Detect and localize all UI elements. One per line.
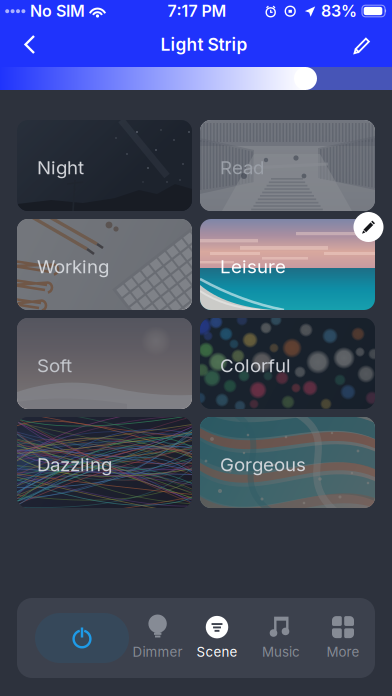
staticText: Soft	[37, 354, 72, 376]
staticText: Scene	[196, 644, 237, 660]
staticText: Light Strip	[160, 34, 247, 55]
staticText: Working	[37, 255, 109, 277]
button[interactable]: Leisure	[200, 219, 375, 310]
staticText: Dimmer	[133, 644, 183, 660]
button[interactable]: Colorful	[200, 318, 375, 409]
staticText: Gorgeous	[220, 453, 306, 475]
staticText: Colorful	[220, 354, 291, 376]
button[interactable]: Scene	[184, 611, 250, 663]
button[interactable]: Power	[35, 613, 129, 663]
button[interactable]: Dazzling	[17, 417, 192, 508]
staticText: Leisure	[220, 255, 286, 277]
button[interactable]: Soft	[17, 318, 192, 409]
staticText: Dazzling	[37, 453, 112, 475]
button[interactable]: Night	[17, 120, 192, 211]
button[interactable]: Edit scene	[353, 212, 383, 242]
button[interactable]: Edit	[340, 22, 384, 66]
button[interactable]: Back	[8, 22, 52, 66]
button[interactable]: Working	[17, 219, 192, 310]
staticText: Music	[262, 644, 300, 660]
staticText: 83%	[321, 2, 357, 20]
button[interactable]: Gorgeous	[200, 417, 375, 508]
staticText: No SIM	[30, 2, 85, 20]
button[interactable]: Dimmer	[125, 611, 191, 663]
button[interactable]: Read	[200, 120, 375, 211]
button[interactable]: More	[310, 611, 376, 663]
staticText: Read	[220, 156, 264, 178]
button[interactable]: Music	[248, 611, 314, 663]
button[interactable]: Brightness	[0, 67, 392, 90]
staticText: 7:17 PM	[167, 2, 226, 20]
staticText: Night	[37, 156, 84, 178]
staticText: More	[326, 644, 359, 660]
